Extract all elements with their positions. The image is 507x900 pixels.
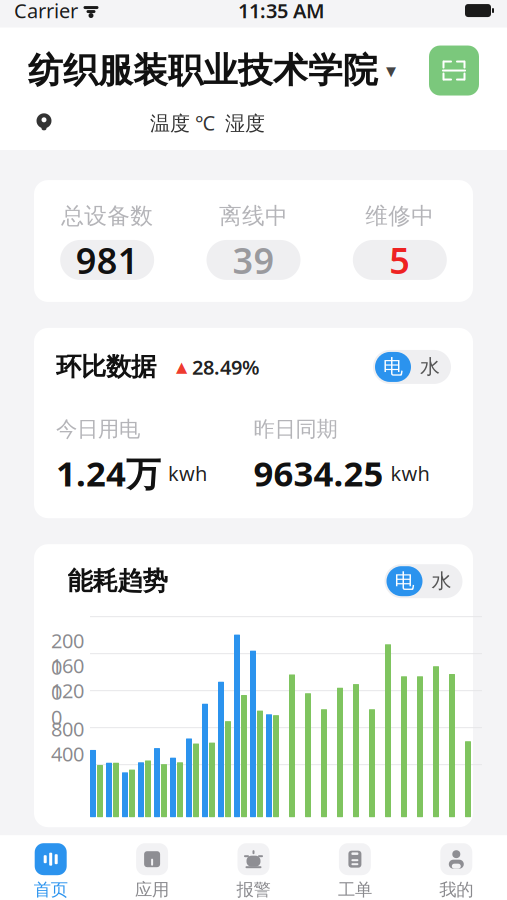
button[interactable]: 水 (422, 566, 460, 596)
staticText: 1200 (51, 677, 84, 730)
staticText: 离线中 (219, 202, 288, 230)
button[interactable]: 纺织服装职业技术学院 (28, 49, 396, 92)
button[interactable]: 工单 (304, 843, 406, 900)
staticText: 首页 (34, 879, 68, 900)
staticText: kwh (390, 460, 429, 486)
staticText: 1.24万 (56, 450, 161, 496)
staticText: 电 (383, 355, 403, 379)
staticText: ▾ (386, 59, 396, 82)
button[interactable]: 扫一扫 (429, 45, 479, 95)
staticText: kwh (168, 460, 207, 486)
staticText: 981 (76, 236, 139, 284)
button[interactable]: 我的 (406, 843, 507, 900)
staticText: 11:35 AM (238, 0, 325, 24)
staticText: 纺织服装职业技术学院 (28, 49, 378, 92)
staticText: 今日用电 (56, 416, 140, 442)
staticText: 水 (431, 569, 451, 593)
staticText: ▲ (176, 359, 187, 375)
staticText: 水 (420, 355, 440, 379)
staticText: 28.49% (192, 354, 260, 380)
staticText (77, 0, 83, 26)
staticText: 5 (389, 236, 410, 284)
button[interactable]: 应用 (101, 843, 203, 900)
staticText: 总设备数 (61, 202, 153, 230)
staticText: 能耗趋势 (67, 566, 167, 597)
staticText: 我的 (439, 879, 473, 900)
staticText: 维修中 (365, 202, 434, 230)
staticText: 环比数据 (56, 351, 156, 382)
staticText: 温度 ℃ 湿度 (150, 109, 265, 136)
button[interactable]: 报警 (203, 843, 304, 900)
staticText: 电 (394, 569, 414, 593)
staticText: 800 (51, 715, 84, 742)
button[interactable]: 电 (375, 352, 411, 382)
staticText: 报警 (236, 879, 270, 900)
staticText: 昨日同期 (253, 416, 337, 442)
staticText: 39 (232, 236, 274, 284)
button[interactable]: 电 (386, 566, 422, 596)
staticText: 应用 (135, 879, 169, 900)
staticText: 400 (51, 740, 84, 767)
button[interactable]: 首页 (0, 843, 101, 900)
button[interactable]: 水 (411, 352, 449, 382)
staticText: 工单 (338, 879, 372, 900)
staticText: 9634.25 (253, 450, 383, 496)
staticText: 2000 (51, 627, 84, 680)
staticText: Carrier (14, 0, 78, 24)
staticText: 1600 (51, 652, 84, 705)
